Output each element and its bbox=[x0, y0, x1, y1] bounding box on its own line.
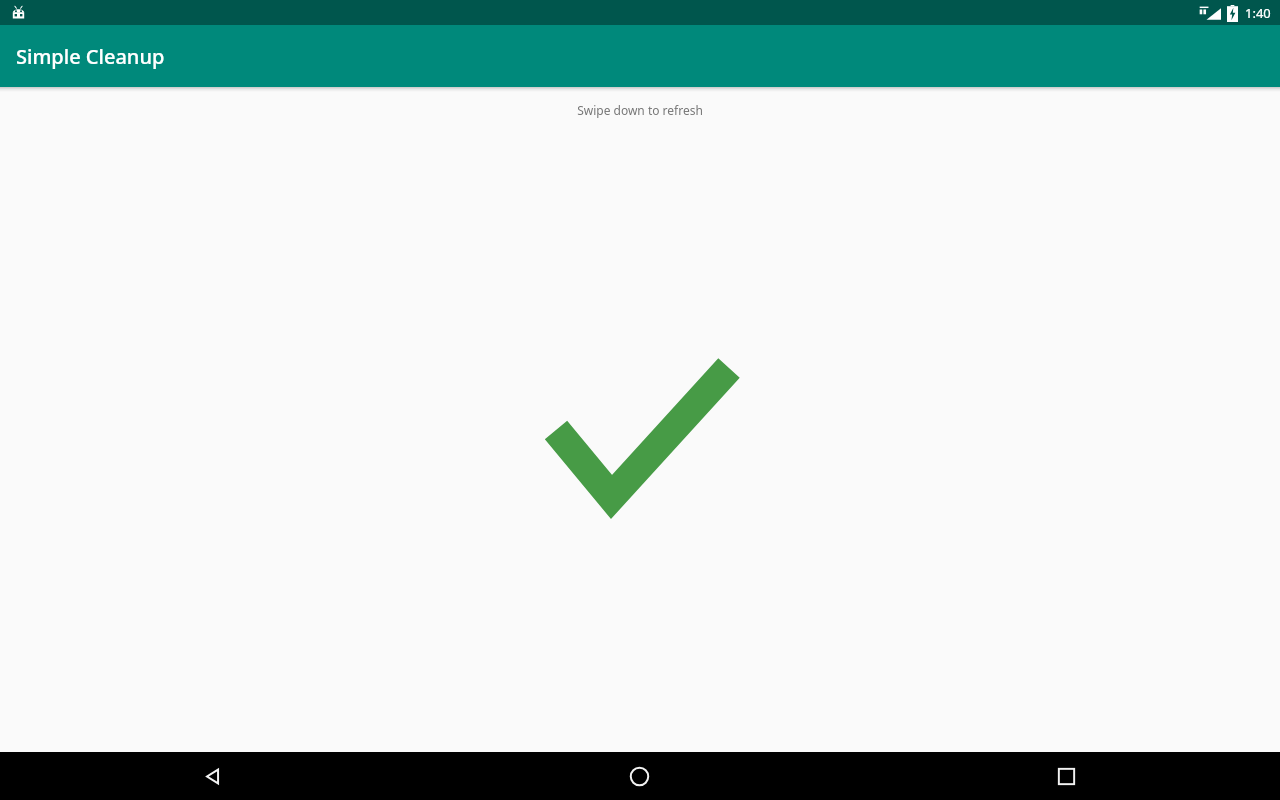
staticText: Simple Cleanup bbox=[16, 43, 165, 70]
button[interactable]: Back bbox=[0, 752, 426, 800]
button[interactable]: Home bbox=[426, 752, 853, 800]
staticText: Swipe down to refresh bbox=[577, 102, 703, 118]
staticText: 1:40 bbox=[1245, 4, 1271, 22]
button[interactable]: Recent apps bbox=[853, 752, 1280, 800]
